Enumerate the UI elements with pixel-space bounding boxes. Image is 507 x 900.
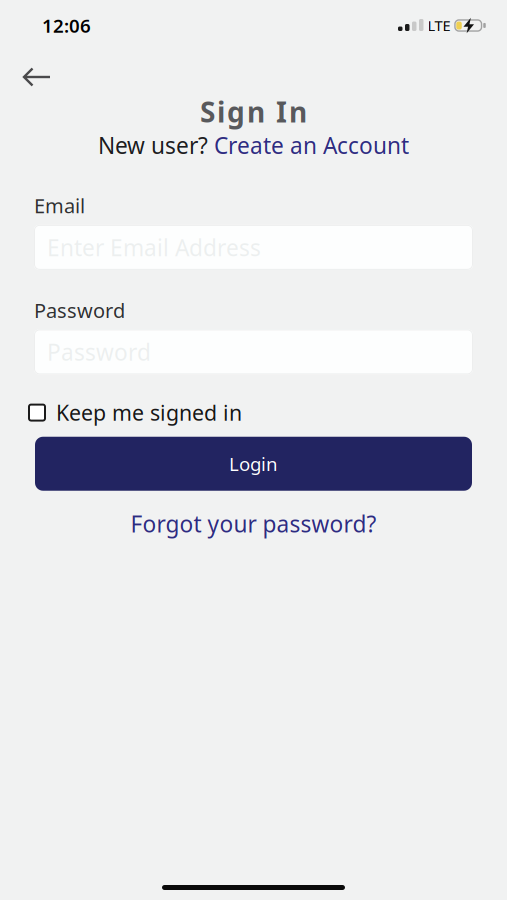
button[interactable]: Login [35, 437, 472, 491]
staticText: 12:06 [42, 13, 91, 38]
staticText: Login [229, 451, 278, 476]
button[interactable]: Password [34, 329, 473, 374]
staticText: Create an Account [214, 130, 409, 160]
staticText: Forgot your password? [130, 509, 376, 539]
staticText: Email [34, 192, 85, 219]
staticText: Keep me signed in [56, 398, 242, 427]
staticText: Enter Email Address [47, 232, 261, 262]
button[interactable]: Create an Account [214, 130, 409, 160]
staticText: Sign In [200, 93, 307, 130]
button[interactable]: Back [0, 67, 51, 87]
button[interactable]: Enter Email Address [34, 225, 473, 270]
button[interactable]: Forgot your password? [130, 509, 376, 539]
staticText: Password [47, 337, 151, 367]
staticText: Password [34, 297, 125, 323]
staticText: LTE [427, 16, 450, 35]
staticText: New user? [98, 130, 214, 160]
button[interactable]: Keep me signed in [28, 398, 242, 427]
